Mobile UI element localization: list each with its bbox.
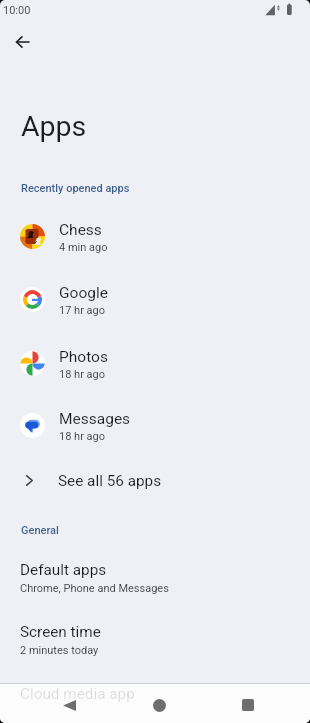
button[interactable]: Messages — [0, 413, 310, 463]
staticText: Default apps — [20, 561, 107, 579]
button[interactable]: Screen time — [0, 620, 310, 672]
staticText: 2 minutes today — [20, 644, 99, 657]
staticText: 18 hr ago — [59, 368, 106, 381]
staticText: Chess — [59, 221, 102, 239]
staticText: Apps — [21, 110, 87, 143]
staticText: Google — [59, 284, 108, 302]
button[interactable]: Photos — [0, 351, 310, 401]
staticText: Cloud media app — [20, 685, 135, 703]
staticText: Recently opened apps — [21, 182, 130, 195]
staticText: 17 hr ago — [59, 304, 106, 317]
button[interactable]: See all 56 apps — [0, 462, 310, 498]
staticText: 4 min ago — [59, 241, 108, 254]
button[interactable]: Cloud media app — [0, 682, 310, 712]
staticText: Photos — [59, 348, 108, 366]
button[interactable]: Navigate up — [2, 22, 42, 62]
staticText: Messages — [59, 410, 131, 428]
button[interactable]: Back — [53, 689, 85, 721]
button[interactable]: Home — [143, 689, 175, 721]
staticText: General — [21, 524, 59, 537]
staticText: Chrome, Phone and Messages — [20, 582, 169, 595]
staticText: See all 56 apps — [58, 472, 162, 490]
button[interactable]: Google — [0, 287, 310, 337]
staticText: Screen time — [20, 623, 101, 641]
staticText: 10:00 — [3, 4, 31, 17]
staticText: 18 hr ago — [59, 430, 106, 443]
button[interactable]: Chess — [0, 224, 310, 274]
button[interactable]: Recent apps — [232, 689, 264, 721]
button[interactable]: Default apps — [0, 558, 310, 610]
